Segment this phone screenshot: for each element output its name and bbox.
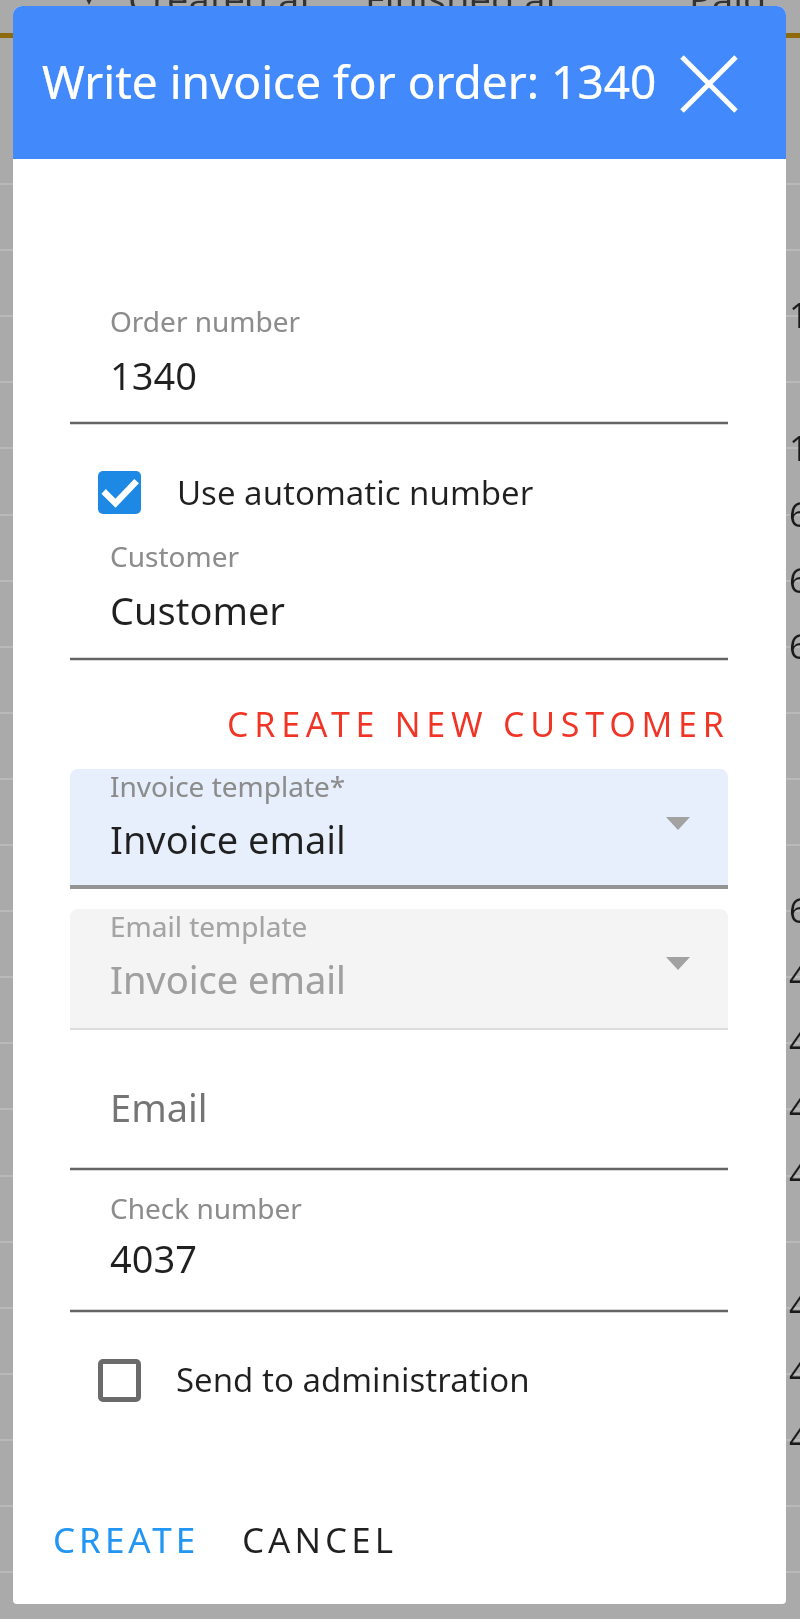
button[interactable]: CREATE NEW CUSTOMER	[227, 701, 730, 747]
staticText: Email template	[110, 907, 308, 945]
button[interactable]: CREATE	[53, 1516, 200, 1564]
staticText: Customer	[110, 537, 239, 575]
staticText: Order number	[110, 302, 301, 340]
staticText: Customer	[110, 584, 286, 636]
staticText: 4	[789, 1151, 800, 1197]
staticText: Email	[110, 1081, 208, 1133]
staticText: 1	[789, 292, 800, 338]
staticText: 1	[789, 425, 800, 471]
staticText: Invoice email	[110, 953, 346, 1005]
staticText: 4	[789, 1019, 800, 1065]
staticText: 4	[789, 953, 800, 999]
staticText: CREATE NEW CUSTOMER	[227, 701, 730, 747]
button[interactable]: Unchecked	[98, 1359, 141, 1402]
staticText: Finished at	[365, 0, 560, 24]
staticText: Check number	[110, 1189, 302, 1227]
staticText: CREATE	[53, 1516, 200, 1564]
staticText: Paid	[689, 0, 767, 24]
staticText: Invoice email	[110, 813, 346, 865]
staticText: 6	[789, 491, 800, 537]
staticText: Write invoice for order: 1340	[42, 50, 657, 113]
staticText: Use automatic number	[177, 470, 534, 515]
staticText: 1340	[110, 349, 197, 401]
staticText: Created at	[128, 0, 314, 24]
button[interactable]	[70, 909, 728, 1028]
staticText: 6	[789, 887, 800, 933]
button[interactable]: Checked	[98, 471, 141, 514]
staticText: Invoice template*	[110, 767, 346, 805]
staticText: 6	[789, 557, 800, 603]
staticText: 6	[789, 623, 800, 669]
button[interactable]	[70, 769, 728, 885]
button[interactable]: CANCEL	[242, 1516, 398, 1564]
staticText: 4	[789, 1085, 800, 1131]
staticText: 4	[789, 1283, 800, 1329]
staticText: 4	[789, 1415, 800, 1461]
staticText: 4	[789, 1349, 800, 1395]
staticText: 4037	[110, 1232, 197, 1284]
staticText: Send to administration	[176, 1357, 530, 1402]
staticText: CANCEL	[242, 1516, 398, 1564]
button[interactable]: Close	[675, 50, 743, 118]
